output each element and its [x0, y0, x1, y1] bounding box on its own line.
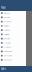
staticText: iCloud Mail	[4, 16, 10, 18]
staticText: Flagged Mail	[4, 50, 12, 52]
staticText: Edit	[1, 67, 6, 71]
staticText: Archive All	[4, 46, 11, 48]
staticText: Work Inbox	[4, 21, 12, 22]
staticText: Drafts Box	[4, 29, 11, 31]
staticText: VIP Senders	[4, 59, 13, 61]
staticText: Trash Bin	[4, 42, 11, 44]
staticText: Junk Email	[4, 38, 10, 39]
staticText: Mail	[1, 6, 6, 9]
staticText: Sent Items	[4, 33, 10, 35]
staticText: Gmail Mail	[4, 25, 9, 27]
staticText: Unread Mail	[4, 55, 12, 56]
staticText: All Inboxes	[4, 12, 11, 14]
